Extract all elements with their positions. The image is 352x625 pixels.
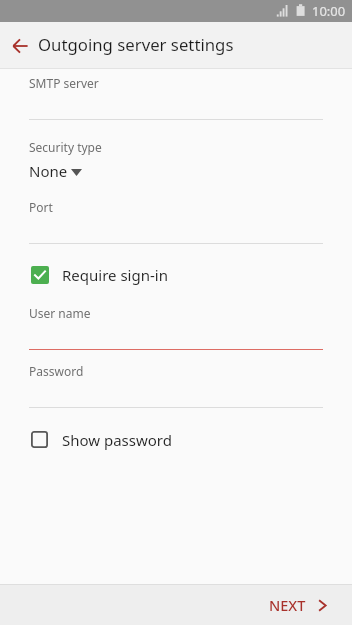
button[interactable]: Require sign-in (0, 262, 352, 288)
button[interactable]: NEXT (253, 587, 352, 623)
staticText: Password (29, 363, 84, 379)
staticText: NEXT (269, 595, 306, 615)
staticText: 10:00 (312, 2, 346, 20)
staticText: SMTP server (29, 75, 99, 91)
button[interactable]: Show password (0, 427, 352, 452)
staticText: Require sign-in (62, 265, 168, 285)
staticText: None (29, 161, 68, 181)
staticText: Security type (29, 139, 102, 155)
button[interactable]: Back (2, 26, 42, 66)
staticText: Outgoing server settings (38, 33, 234, 56)
button[interactable]: None (0, 161, 352, 181)
staticText: Port (29, 199, 53, 215)
staticText: User name (29, 305, 91, 321)
staticText: Show password (62, 430, 172, 450)
